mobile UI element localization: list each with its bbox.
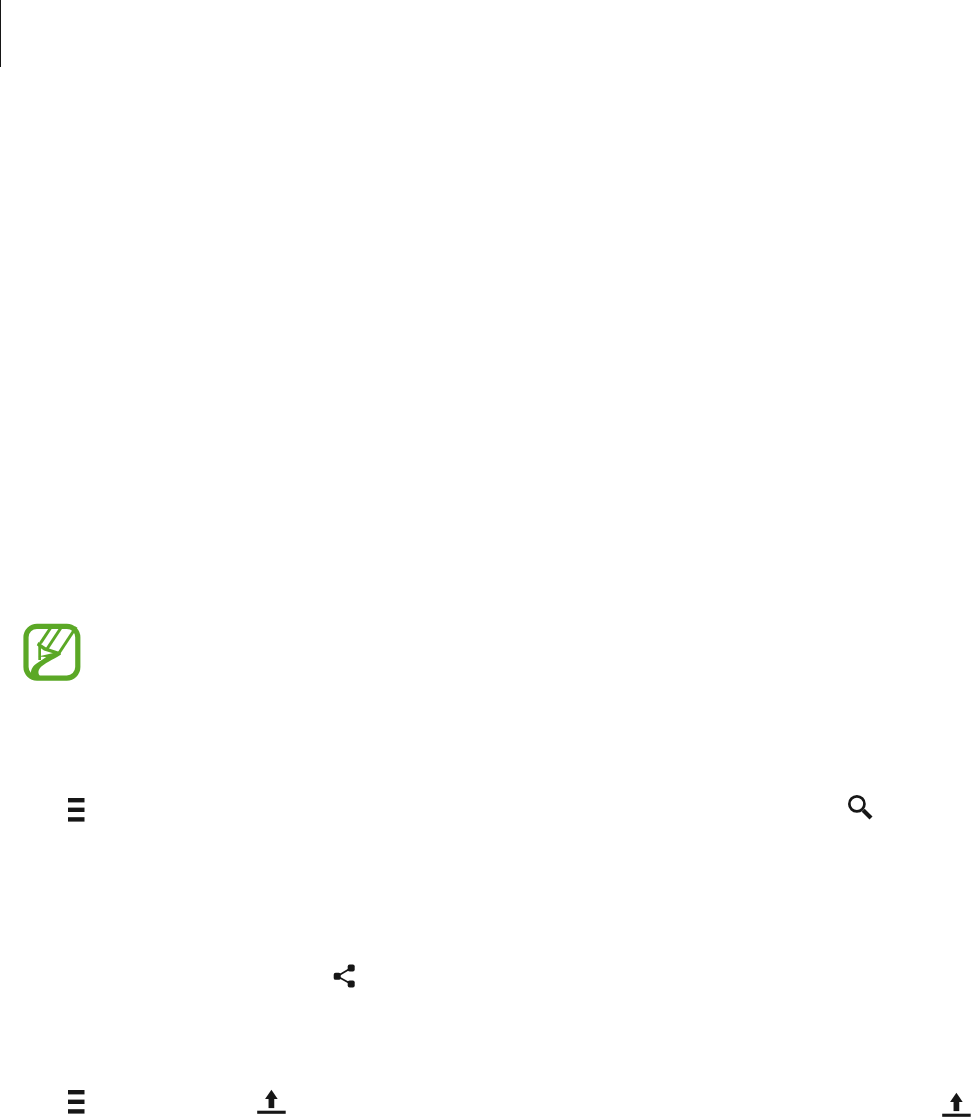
button[interactable]: Menu [68,1090,85,1114]
button[interactable]: Upload [257,1089,286,1114]
button[interactable]: Share [333,964,356,988]
button[interactable]: App icon [23,623,81,681]
button[interactable]: Upload [942,1092,971,1117]
button[interactable]: Menu [68,798,85,822]
button[interactable]: Search [847,793,875,821]
